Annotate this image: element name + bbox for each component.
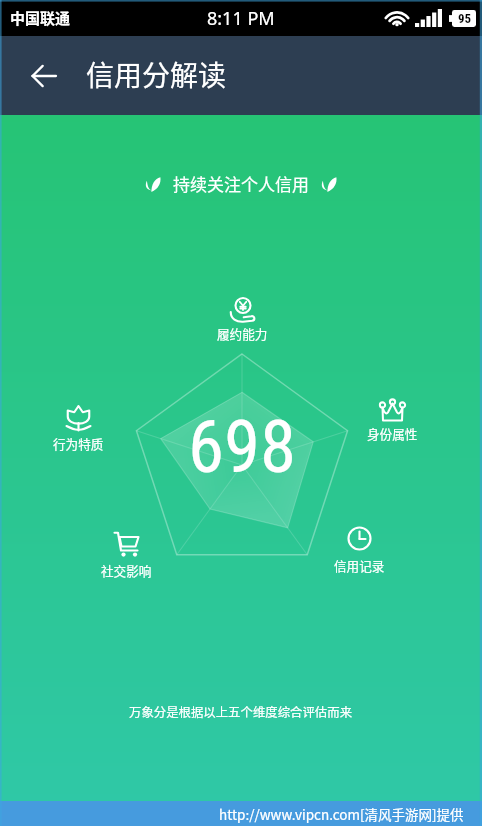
staticText: 95 [458,11,472,26]
staticText: 持续关注个人信用 [173,171,309,196]
staticText: 8:11 PM [207,6,275,31]
staticText: http://www.vipcn.com[清风手游网]提供 [219,804,464,824]
staticText: 行为特质 [53,434,104,452]
button[interactable]: Back [14,46,73,105]
button[interactable]: 身份属性 [358,399,426,442]
staticText: 身份属性 [367,424,418,442]
staticText: 履约能力 [217,324,268,342]
staticText: 万象分是根据以上五个维度综合评估而来 [129,703,353,721]
staticText: 社交影响 [101,561,152,579]
staticText: 中国联通 [10,7,71,29]
button[interactable]: 履约能力 [208,297,276,342]
staticText: 698 [188,404,297,490]
button[interactable]: 行为特质 [44,405,112,452]
staticText: 信用记录 [334,556,385,574]
button[interactable]: 信用记录 [325,526,393,574]
button[interactable]: 社交影响 [92,531,160,579]
staticText: 信用分解读 [86,54,227,95]
